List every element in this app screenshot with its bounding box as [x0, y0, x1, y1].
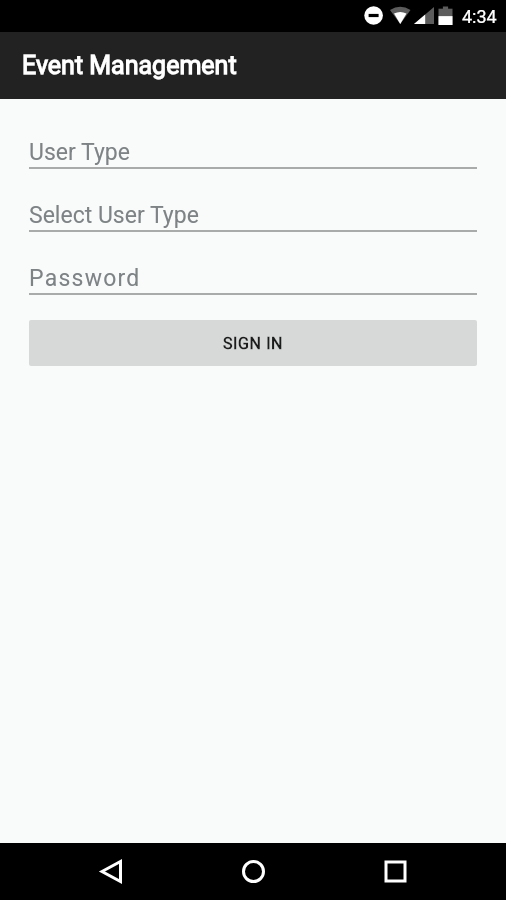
button[interactable]: User Type	[29, 136, 477, 169]
staticText: Event Management	[22, 51, 237, 80]
button[interactable]: Recent apps	[337, 843, 506, 900]
staticText: Select User Type	[29, 202, 199, 229]
button[interactable]: Back	[0, 843, 168, 900]
button[interactable]: SIGN IN	[29, 320, 477, 366]
button[interactable]: Password	[29, 262, 477, 295]
staticText: 4:34	[462, 6, 497, 27]
staticText: Password	[29, 265, 141, 292]
button[interactable]: Event Management	[0, 32, 506, 99]
button[interactable]: Home	[168, 843, 337, 900]
staticText: SIGN IN	[223, 334, 284, 353]
button[interactable]: Select User Type	[29, 199, 477, 232]
staticText: User Type	[29, 139, 130, 166]
